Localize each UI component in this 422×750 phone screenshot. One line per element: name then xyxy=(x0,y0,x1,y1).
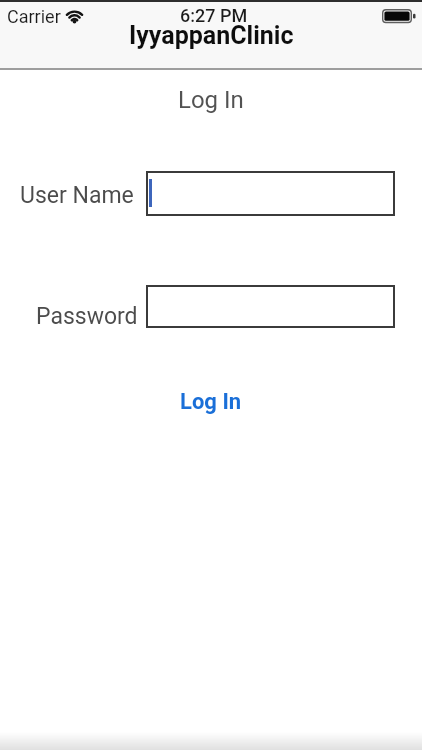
button[interactable] xyxy=(146,285,395,328)
button[interactable]: Log In xyxy=(168,383,254,421)
button[interactable] xyxy=(146,171,395,216)
staticText: Carrier xyxy=(7,6,61,27)
staticText: Password xyxy=(36,303,138,330)
staticText: User Name xyxy=(20,182,134,209)
staticText: Log In xyxy=(178,86,244,114)
staticText: Log In xyxy=(180,389,242,415)
staticText: 6:27 PM xyxy=(180,5,248,26)
staticText: IyyappanClinic xyxy=(129,21,294,50)
